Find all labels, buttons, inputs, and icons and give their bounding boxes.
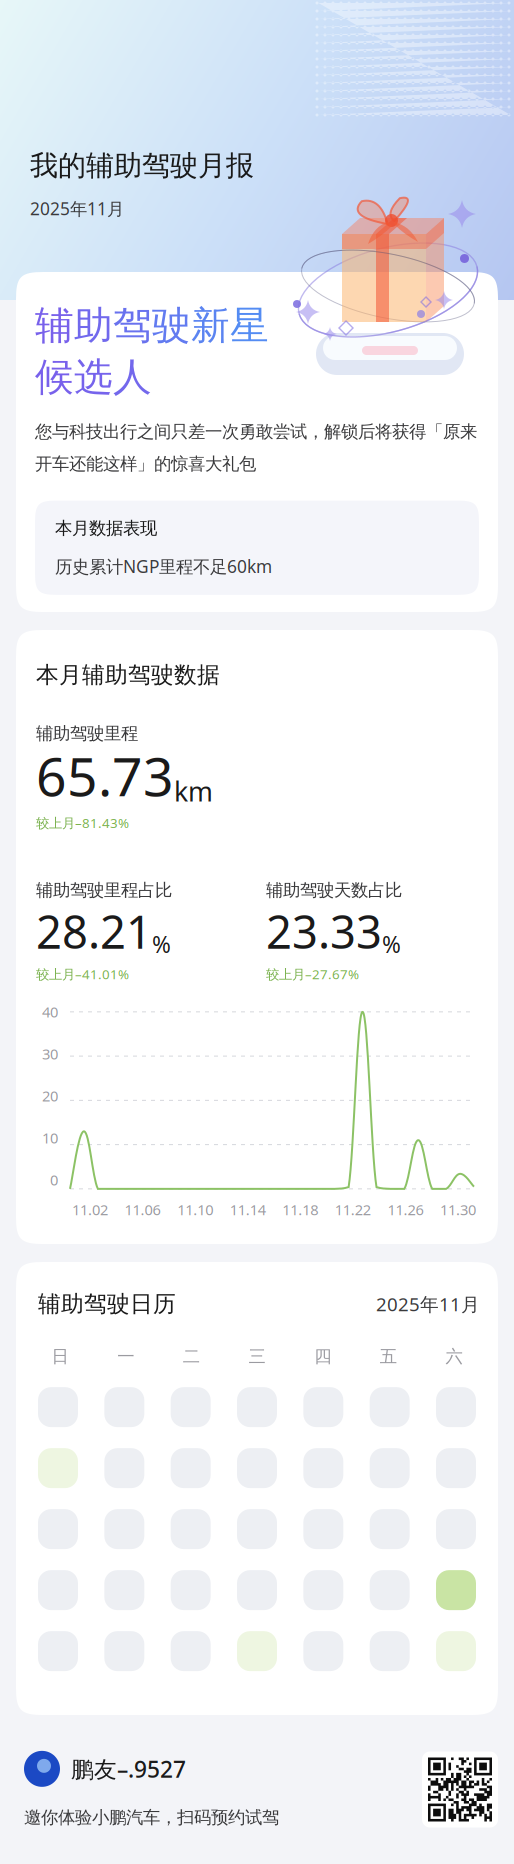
- staticText: %: [382, 929, 401, 959]
- staticText: 二: [183, 1346, 200, 1367]
- staticText: 四: [314, 1346, 331, 1367]
- staticText: 三: [248, 1346, 265, 1367]
- staticText: 辅助驾驶里程: [36, 723, 138, 744]
- staticText: 开车还能这样」的惊喜大礼包: [35, 453, 256, 475]
- staticText: 邀你体验小鹏汽车，扫码预约试驾: [24, 1807, 279, 1828]
- staticText: %: [152, 929, 171, 959]
- staticText: 辅助驾驶里程占比: [36, 880, 172, 901]
- staticText: 驾: [113, 302, 152, 349]
- staticText: 星: [230, 302, 269, 349]
- staticText: 11.06: [125, 1200, 161, 1219]
- staticText: 辅助驾驶天数占比: [266, 880, 402, 901]
- staticText: 10: [42, 1128, 58, 1148]
- staticText: 28.21: [36, 901, 152, 961]
- staticText: 11.10: [177, 1200, 213, 1219]
- staticText: 您与科技出行之间只差一次勇敢尝试，解锁后将获得「原来: [35, 421, 477, 442]
- staticText: 40: [42, 1002, 58, 1022]
- staticText: 新: [191, 302, 230, 349]
- staticText: 11.02: [72, 1200, 108, 1219]
- staticText: 2025年11月: [376, 1291, 480, 1316]
- staticText: 人: [113, 353, 152, 401]
- staticText: 11.22: [335, 1200, 371, 1219]
- staticText: 65.73: [36, 740, 174, 811]
- staticText: 11.30: [440, 1200, 476, 1219]
- staticText: 11.18: [282, 1200, 318, 1219]
- staticText: 我的辅助驾驶月报: [30, 149, 254, 183]
- staticText: 0: [50, 1170, 58, 1190]
- staticText: 2025年11月: [30, 197, 124, 220]
- staticText: 助: [74, 302, 113, 349]
- staticText: 选: [74, 353, 113, 401]
- staticText: 一: [117, 1346, 134, 1367]
- staticText: km: [174, 773, 213, 809]
- staticText: 较上月–41.01%: [36, 965, 129, 983]
- staticText: 历史累计NGP里程不足60km: [55, 555, 272, 578]
- staticText: 本月辅助驾驶数据: [36, 661, 220, 689]
- staticText: 20: [42, 1086, 58, 1106]
- staticText: 日: [51, 1346, 68, 1367]
- staticText: 较上月–27.67%: [266, 965, 359, 983]
- staticText: 30: [42, 1044, 58, 1064]
- staticText: 23.33: [266, 901, 382, 961]
- staticText: 六: [445, 1346, 462, 1367]
- staticText: 鹏友–.9527: [71, 1754, 186, 1784]
- staticText: 本月数据表现: [55, 518, 157, 539]
- staticText: 11.26: [387, 1200, 423, 1219]
- staticText: 辅: [35, 302, 74, 349]
- staticText: 五: [380, 1346, 397, 1367]
- staticText: 11.14: [230, 1200, 266, 1219]
- staticText: 驶: [152, 302, 191, 349]
- staticText: 候: [35, 353, 74, 401]
- staticText: 辅助驾驶日历: [38, 1290, 176, 1318]
- staticText: 较上月–81.43%: [36, 814, 129, 832]
